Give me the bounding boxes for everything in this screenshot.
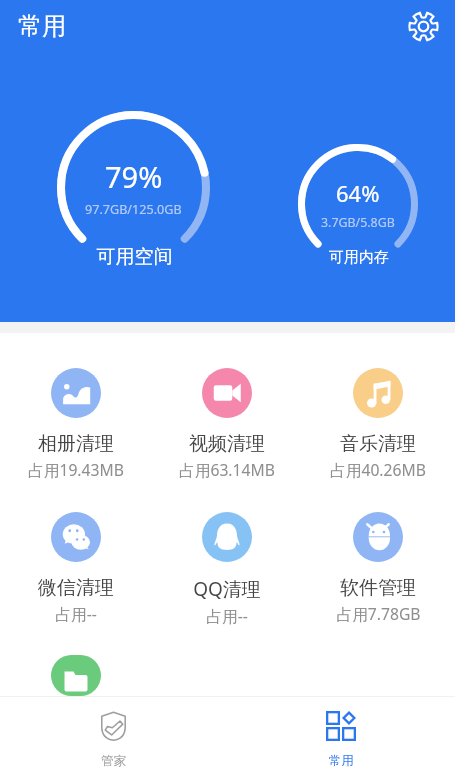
staticText: 相册清理 <box>38 432 114 456</box>
button[interactable]: 音乐清理 <box>303 368 453 480</box>
button[interactable]: 常用 <box>227 697 455 769</box>
button[interactable]: 视频清理 <box>152 368 302 480</box>
staticText: 音乐清理 <box>340 432 416 456</box>
staticText: 占用19.43MB <box>28 459 124 480</box>
button[interactable]: QQ清理 <box>152 512 302 626</box>
button[interactable]: 软件管理 <box>303 512 453 624</box>
staticText: 占用63.14MB <box>179 459 275 480</box>
button[interactable]: 微信清理 <box>1 512 151 624</box>
staticText: 常用 <box>18 11 66 41</box>
staticText: 64% <box>336 178 380 208</box>
staticText: 可用内存 <box>299 248 419 267</box>
staticText: 常用 <box>329 753 354 769</box>
staticText: 占用40.26MB <box>330 459 426 480</box>
button[interactable]: Settings <box>401 4 445 48</box>
staticText: 可用空间 <box>54 245 215 269</box>
staticText: QQ清理 <box>193 576 261 602</box>
staticText: 微信清理 <box>38 576 114 600</box>
button[interactable]: 相册清理 <box>1 368 151 480</box>
staticText: 软件管理 <box>340 576 416 600</box>
staticText: 管家 <box>101 753 126 769</box>
staticText: 占用-- <box>55 603 97 624</box>
button[interactable]: 管家 <box>0 697 227 769</box>
staticText: 97.7GB/125.0GB <box>85 201 182 218</box>
staticText: 3.7GB/5.8GB <box>321 214 395 231</box>
staticText: 占用7.78GB <box>336 603 421 624</box>
staticText: 视频清理 <box>189 432 265 456</box>
staticText: 占用-- <box>206 605 248 626</box>
staticText: 79% <box>105 157 163 196</box>
